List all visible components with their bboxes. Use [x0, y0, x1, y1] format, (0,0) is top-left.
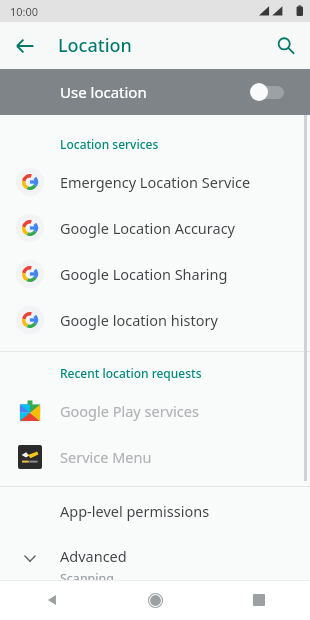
staticText: Scanning: [60, 570, 114, 580]
staticText: Recent location requests: [60, 365, 202, 381]
button[interactable]: Emergency Location Service: [0, 159, 310, 205]
button[interactable]: Back: [7, 28, 43, 64]
button[interactable]: App-level permissions: [0, 487, 310, 535]
staticText: Emergency Location Service: [60, 172, 251, 192]
button[interactable]: Home: [104, 580, 207, 620]
staticText: 10:00: [10, 4, 39, 19]
staticText: Service Menu: [60, 447, 152, 467]
button[interactable]: Google location history: [0, 297, 310, 343]
staticText: Google Location Sharing: [60, 264, 228, 284]
staticText: Google Location Accuracy: [60, 218, 235, 238]
staticText: Advanced: [60, 546, 127, 566]
button[interactable]: Use location: [0, 69, 310, 115]
button[interactable]: Back: [0, 580, 104, 620]
staticText: Google location history: [60, 310, 218, 330]
staticText: Use location: [60, 82, 250, 102]
button[interactable]: Google Location Sharing: [0, 251, 310, 297]
button[interactable]: Advanced: [0, 535, 310, 580]
button[interactable]: Service Menu: [0, 434, 310, 480]
button[interactable]: Google Play services: [0, 388, 310, 434]
button[interactable]: Recent apps: [207, 580, 310, 620]
staticText: App-level permissions: [60, 501, 210, 521]
staticText: Location services: [60, 136, 159, 152]
button[interactable]: Google Location Accuracy: [0, 205, 310, 251]
staticText: Location: [58, 33, 132, 58]
staticText: Google Play services: [60, 401, 199, 421]
button[interactable]: Search: [268, 28, 304, 64]
